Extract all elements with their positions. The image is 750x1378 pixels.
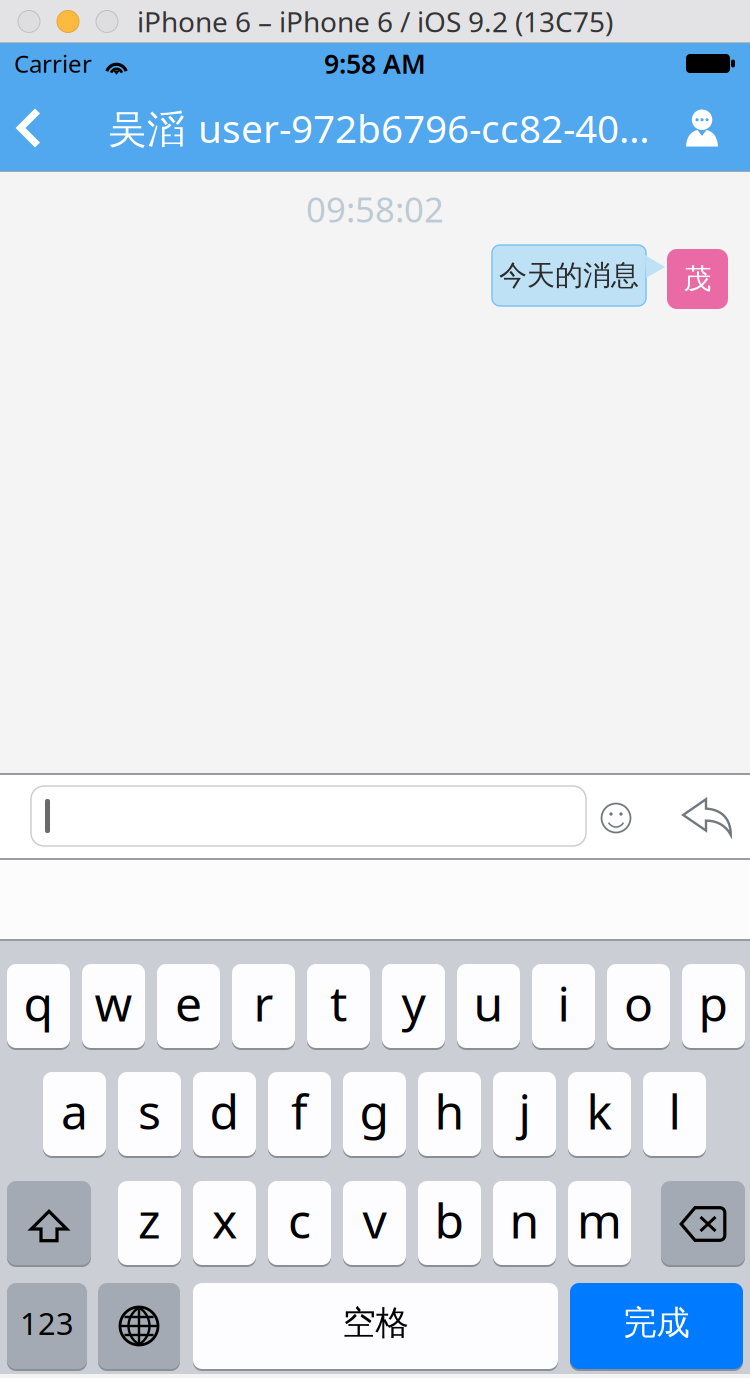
staticText: n xyxy=(509,1188,539,1252)
button[interactable]: b xyxy=(418,1180,481,1266)
button[interactable]: j xyxy=(493,1071,556,1157)
staticText: c xyxy=(288,1188,311,1252)
staticText: 完成 xyxy=(623,1302,689,1343)
button[interactable]: 空格 xyxy=(193,1282,558,1370)
button[interactable]: z xyxy=(118,1180,181,1266)
staticText: f xyxy=(291,1079,308,1143)
button[interactable]: i xyxy=(532,963,595,1049)
button[interactable]: Emoji xyxy=(601,803,631,833)
button[interactable]: Back xyxy=(0,84,58,172)
button[interactable]: Delete xyxy=(661,1180,745,1266)
button[interactable]: Send xyxy=(682,798,732,836)
button[interactable]: p xyxy=(682,963,745,1049)
staticText: p xyxy=(698,971,728,1035)
button[interactable]: l xyxy=(643,1071,706,1157)
staticText: h xyxy=(434,1079,464,1143)
staticText: s xyxy=(138,1079,161,1143)
button[interactable]: m xyxy=(568,1180,631,1266)
staticText: y xyxy=(401,971,425,1035)
button[interactable]: 123 xyxy=(7,1282,87,1370)
button[interactable]: d xyxy=(193,1071,256,1157)
staticText: q xyxy=(23,971,53,1035)
button[interactable]: r xyxy=(232,963,295,1049)
button[interactable]: Contact info xyxy=(654,84,750,172)
staticText: x xyxy=(212,1188,237,1252)
staticText: 吴滔 user-972b6796-cc82-40… xyxy=(108,102,650,154)
button[interactable]: u xyxy=(457,963,520,1049)
staticText: e xyxy=(175,971,202,1035)
button[interactable]: y xyxy=(382,963,445,1049)
staticText: w xyxy=(94,971,132,1035)
button[interactable]: a xyxy=(43,1071,106,1157)
button[interactable]: Next keyboard xyxy=(98,1282,180,1370)
button[interactable]: s xyxy=(118,1071,181,1157)
button[interactable]: f xyxy=(268,1071,331,1157)
button[interactable]: x xyxy=(193,1180,256,1266)
staticText: a xyxy=(61,1079,88,1143)
button[interactable]: c xyxy=(268,1180,331,1266)
staticText: g xyxy=(359,1079,389,1143)
staticText: t xyxy=(330,971,347,1035)
staticText: i xyxy=(557,971,569,1035)
staticText: Carrier xyxy=(14,48,92,79)
staticText: b xyxy=(434,1188,464,1252)
staticText: m xyxy=(577,1188,622,1252)
staticText: 茂 xyxy=(683,262,711,296)
button[interactable]: q xyxy=(7,963,70,1049)
button[interactable]: v xyxy=(343,1180,406,1266)
button[interactable]: g xyxy=(343,1071,406,1157)
staticText: 9:58 AM xyxy=(324,46,426,81)
button[interactable]: k xyxy=(568,1071,631,1157)
button[interactable]: w xyxy=(82,963,145,1049)
button[interactable]: o xyxy=(607,963,670,1049)
staticText: j xyxy=(518,1079,530,1143)
staticText: o xyxy=(624,971,653,1035)
button[interactable]: t xyxy=(307,963,370,1049)
staticText: iPhone 6 – iPhone 6 / iOS 9.2 (13C75) xyxy=(137,3,613,40)
button[interactable]: h xyxy=(418,1071,481,1157)
staticText: 今天的消息 xyxy=(499,258,639,293)
staticText: v xyxy=(362,1188,386,1252)
staticText: l xyxy=(668,1079,680,1143)
button[interactable]: n xyxy=(493,1180,556,1266)
staticText: r xyxy=(253,971,273,1035)
button[interactable]: 完成 xyxy=(570,1282,743,1370)
staticText: k xyxy=(586,1079,612,1143)
button[interactable]: Shift xyxy=(7,1180,91,1266)
staticText: d xyxy=(209,1079,239,1143)
button[interactable]: e xyxy=(157,963,220,1049)
staticText: z xyxy=(138,1188,161,1252)
staticText: u xyxy=(473,971,503,1035)
staticText: 空格 xyxy=(342,1302,408,1343)
staticText: 09:58:02 xyxy=(306,186,444,232)
staticText: 123 xyxy=(20,1303,74,1343)
